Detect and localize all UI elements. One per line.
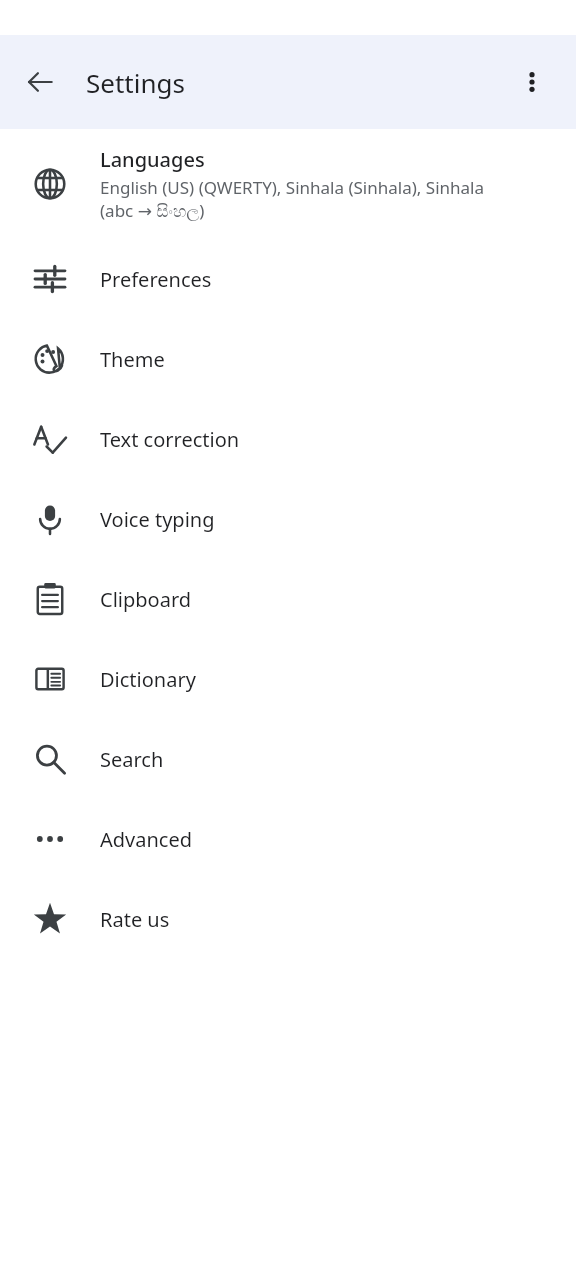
button[interactable]: Languages (0, 129, 576, 239)
staticText: Languages (100, 146, 205, 173)
button[interactable]: Search (0, 719, 576, 799)
button[interactable]: Back (14, 56, 66, 108)
button[interactable]: More options (506, 56, 558, 108)
staticText: Search (100, 746, 164, 773)
staticText: English (US) (QWERTY), Sinhala (Sinhala)… (100, 176, 484, 222)
staticText: Dictionary (100, 666, 196, 693)
staticText: Preferences (100, 266, 212, 293)
staticText: Theme (100, 346, 165, 373)
button[interactable]: Rate us (0, 879, 576, 959)
staticText: Clipboard (100, 586, 192, 613)
staticText: Voice typing (100, 506, 215, 533)
staticText: Rate us (100, 906, 170, 933)
staticText: Advanced (100, 826, 192, 853)
button[interactable]: Preferences (0, 239, 576, 319)
button[interactable]: Theme (0, 319, 576, 399)
button[interactable]: Clipboard (0, 559, 576, 639)
button[interactable]: Voice typing (0, 479, 576, 559)
button[interactable]: Advanced (0, 799, 576, 879)
staticText: Text correction (100, 426, 240, 453)
button[interactable]: Text correction (0, 399, 576, 479)
staticText: Settings (86, 65, 185, 100)
button[interactable]: Dictionary (0, 639, 576, 719)
